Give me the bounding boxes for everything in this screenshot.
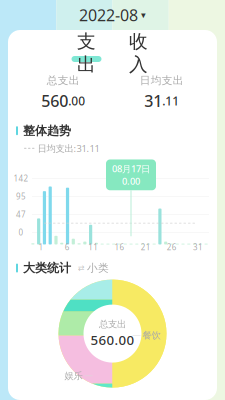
button[interactable]: 收入 (121, 41, 155, 65)
staticText: 95 (16, 191, 26, 202)
staticText: 31 (144, 90, 162, 111)
staticText: .00 (68, 93, 85, 109)
staticText: .11 (162, 93, 179, 109)
staticText: ▾ (141, 10, 146, 20)
button[interactable]: ⇄ (76, 260, 111, 276)
staticText: 日均支出:31.11 (37, 142, 99, 154)
staticText: 16 (114, 242, 124, 252)
staticText: 小类 (87, 261, 109, 275)
staticText: 560 (41, 90, 68, 111)
button[interactable]: 2022-08 (73, 1, 152, 29)
staticText: 560.00 (90, 331, 134, 349)
staticText: 0 (18, 227, 23, 238)
staticText: 31 (193, 242, 203, 252)
staticText: 0.00 (122, 175, 140, 187)
staticText: 142 (13, 173, 28, 184)
staticText: 47 (16, 209, 26, 220)
button[interactable]: 支出 (69, 41, 103, 65)
staticText: ⇄ (78, 263, 85, 273)
staticText: 08月17日 (112, 162, 150, 175)
staticText: 餐饮 (142, 330, 160, 341)
staticText: 支出 (77, 30, 96, 76)
staticText: 1 (39, 242, 44, 252)
staticText: 娱乐 (64, 370, 82, 382)
staticText: 大类统计 (23, 261, 71, 275)
staticText: 总支出 (99, 318, 126, 330)
staticText: 6 (65, 242, 70, 252)
staticText: 总支出 (47, 74, 80, 87)
staticText: 11 (88, 242, 98, 252)
staticText: 整体趋势 (23, 123, 71, 138)
staticText: 日均支出 (140, 74, 184, 87)
staticText: 21 (141, 242, 151, 252)
staticText: 2022-08 (79, 4, 138, 26)
staticText: 收入 (129, 30, 148, 76)
staticText: 26 (167, 242, 177, 252)
